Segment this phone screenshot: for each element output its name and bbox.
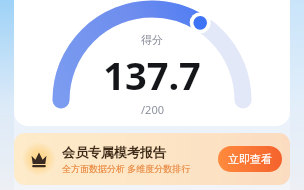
staticText: 得分: [141, 33, 163, 47]
staticText: 全方面数据分析 多维度分数排行: [62, 162, 191, 174]
staticText: 会员专属模考报告: [62, 144, 166, 160]
button[interactable]: 会员专属模考报告: [14, 133, 290, 185]
staticText: 立即查看: [228, 152, 272, 166]
button[interactable]: 立即查看: [218, 146, 282, 172]
button[interactable]: [14, 0, 290, 126]
staticText: /200: [141, 102, 164, 117]
staticText: 137.7: [103, 49, 201, 101]
